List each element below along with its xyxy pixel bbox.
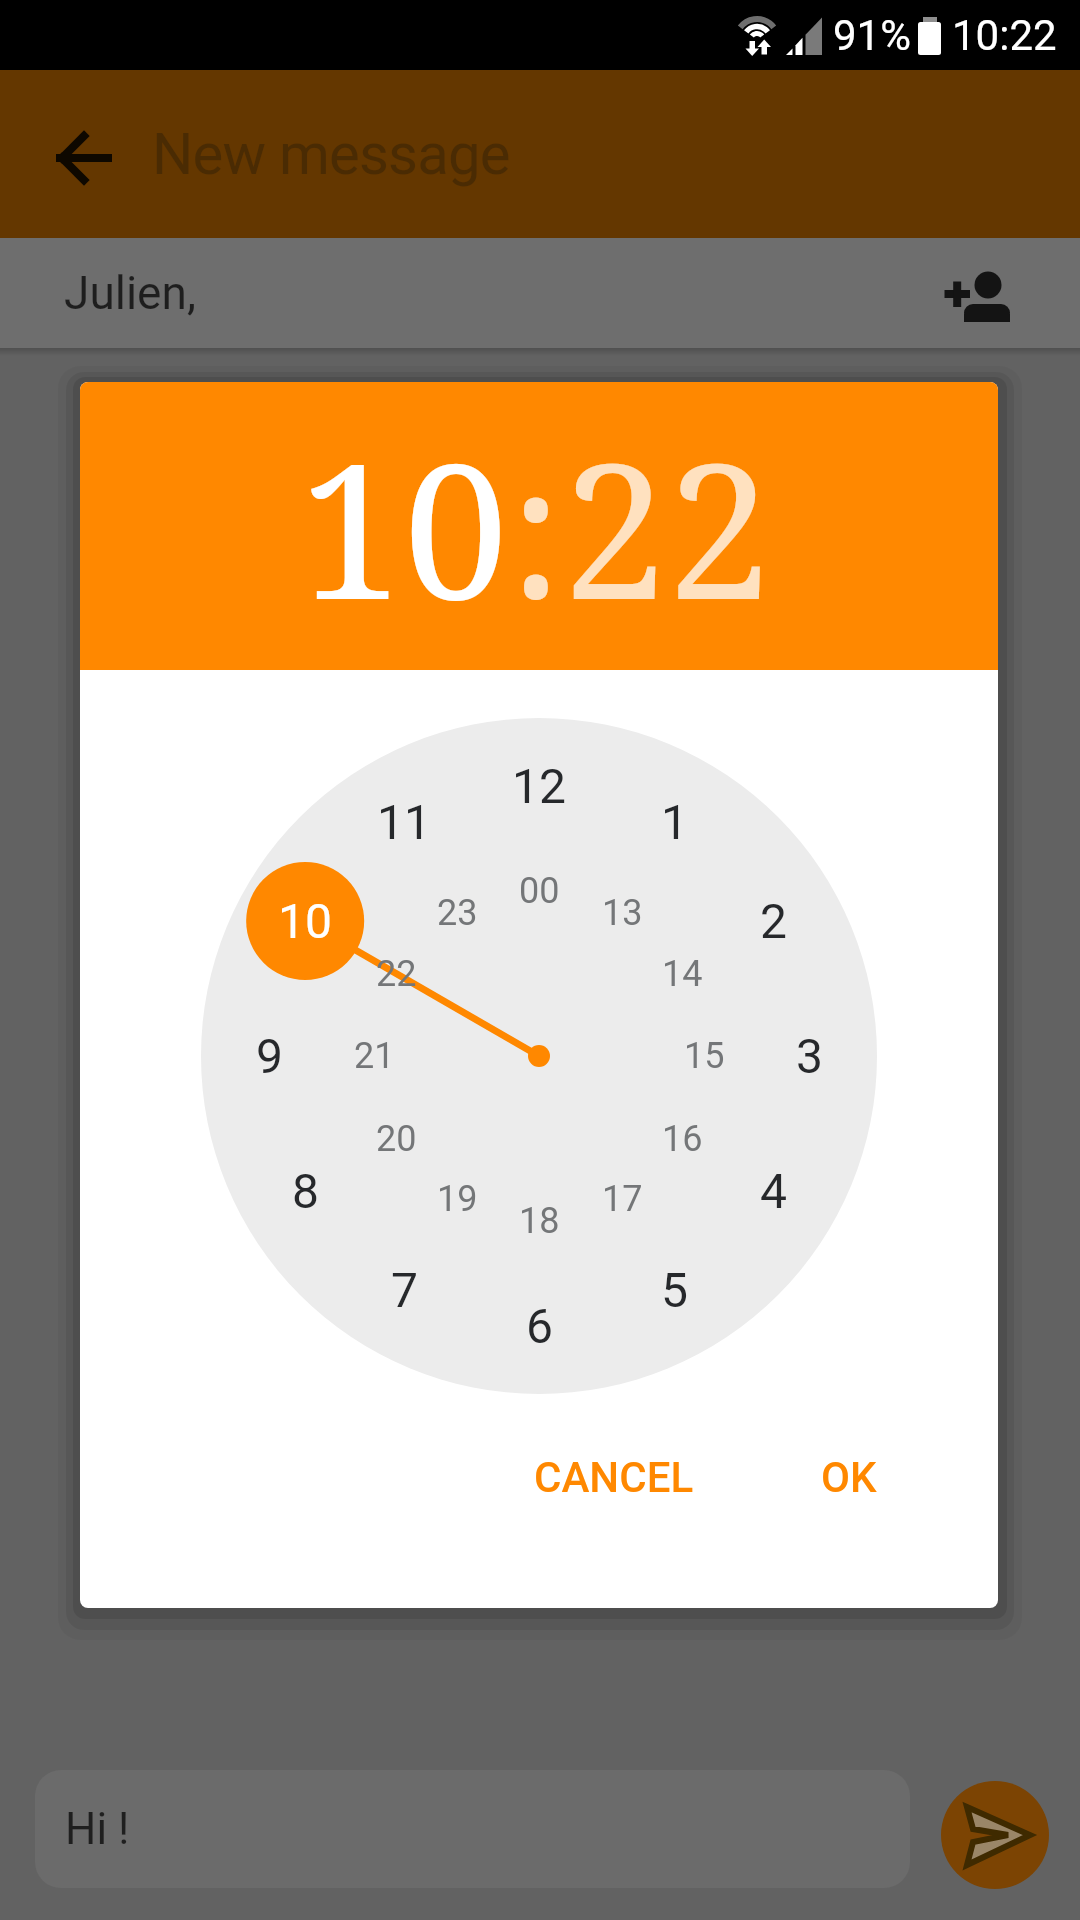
button[interactable]: 18 (489, 1181, 589, 1261)
button[interactable]: 21 (324, 1016, 424, 1096)
staticText: 8 (292, 1163, 319, 1219)
button[interactable]: 1 (624, 782, 724, 862)
button[interactable]: 00 (489, 851, 589, 931)
button[interactable]: 6 (489, 1286, 589, 1366)
staticText: 13 (602, 892, 643, 934)
staticText: 10 (299, 399, 509, 654)
button[interactable]: Hi ! (35, 1770, 910, 1888)
button[interactable]: 16 (632, 1099, 732, 1179)
button[interactable]: 19 (407, 1159, 507, 1239)
button[interactable]: 2 (723, 881, 823, 961)
button[interactable] (941, 1781, 1049, 1889)
button[interactable]: 17 (572, 1159, 672, 1239)
staticText: 18 (519, 1200, 560, 1242)
button[interactable]: 10 (255, 881, 355, 961)
button[interactable]: 4 (723, 1151, 823, 1231)
button[interactable]: 13 (572, 873, 672, 953)
staticText: 7 (391, 1262, 418, 1318)
button[interactable]: 23 (407, 873, 507, 953)
staticText: 12 (512, 758, 566, 814)
button[interactable]: 8 (255, 1151, 355, 1231)
button[interactable]: 7 (354, 1250, 454, 1330)
button[interactable]: CANCEL (534, 1429, 694, 1525)
button[interactable]: 22 (346, 934, 446, 1014)
staticText: 23 (437, 892, 478, 934)
button[interactable]: 3 (759, 1016, 859, 1096)
button[interactable]: 12 (489, 746, 589, 826)
staticText: Hi ! (65, 1803, 130, 1855)
staticText: 14 (662, 953, 703, 995)
staticText: :22 (509, 399, 772, 654)
staticText: OK (821, 1453, 877, 1502)
button[interactable]: 15 (654, 1016, 754, 1096)
staticText: 15 (684, 1035, 725, 1077)
staticText: CANCEL (534, 1453, 694, 1502)
staticText: 17 (602, 1178, 643, 1220)
staticText: 2 (760, 893, 787, 949)
staticText: 4 (760, 1163, 787, 1219)
button[interactable]: 11 (354, 782, 454, 862)
staticText: 19 (437, 1178, 478, 1220)
button[interactable]: 5 (624, 1250, 724, 1330)
staticText: 10:22 (952, 11, 1057, 60)
button[interactable] (48, 122, 120, 194)
staticText: Julien, (64, 266, 196, 320)
staticText: 22 (376, 953, 417, 995)
button[interactable]: 9 (219, 1016, 319, 1096)
staticText: 1 (661, 794, 688, 850)
staticText: 10 (278, 893, 332, 949)
staticText: 11 (377, 794, 431, 850)
staticText: New message (152, 120, 510, 188)
staticText: 16 (662, 1118, 703, 1160)
staticText: 20 (376, 1118, 417, 1160)
staticText: 9 (256, 1028, 283, 1084)
staticText: 5 (661, 1262, 688, 1318)
staticText: 3 (796, 1028, 823, 1084)
staticText: 00 (519, 870, 560, 912)
staticText: 91% (833, 11, 911, 60)
button[interactable]: 14 (632, 934, 732, 1014)
staticText: 6 (526, 1298, 553, 1354)
staticText: 21 (354, 1035, 395, 1077)
button[interactable]: 20 (346, 1099, 446, 1179)
button[interactable]: OK (784, 1429, 914, 1525)
button[interactable] (920, 253, 1020, 333)
